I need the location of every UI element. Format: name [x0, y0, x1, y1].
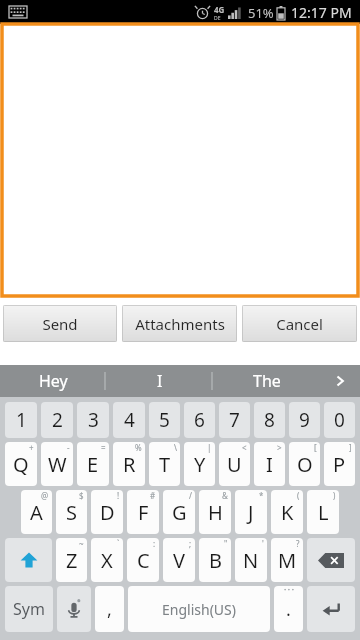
staticText: :	[153, 538, 156, 549]
staticText: <	[242, 442, 247, 453]
button[interactable]: Sym	[5, 586, 53, 632]
staticText: C	[137, 547, 150, 574]
staticText: [	[314, 442, 317, 453]
button[interactable]: I	[106, 365, 213, 397]
button[interactable]: Send	[3, 305, 117, 342]
staticText: L	[318, 499, 329, 526]
staticText: Cancel	[276, 314, 323, 334]
staticText: "	[224, 538, 228, 549]
staticText: 9	[299, 407, 310, 433]
button[interactable]: +	[5, 442, 37, 486]
button[interactable]: *	[235, 490, 267, 534]
button[interactable]: -	[41, 442, 73, 486]
button[interactable]: =	[77, 442, 109, 486]
staticText: R	[123, 451, 136, 478]
button[interactable]: 3	[77, 402, 109, 438]
button[interactable]: (	[271, 490, 303, 534]
staticText: $	[79, 490, 84, 501]
staticText: >	[277, 442, 282, 453]
staticText: U	[227, 451, 242, 478]
button[interactable]: ,	[95, 586, 124, 632]
button[interactable]: |	[184, 442, 215, 486]
button[interactable]: 0	[324, 402, 355, 438]
staticText: ,	[107, 597, 112, 622]
button[interactable]: 8	[254, 402, 285, 438]
button[interactable]: The	[213, 365, 320, 397]
staticText: Q	[13, 451, 29, 478]
staticText: O	[297, 451, 313, 478]
staticText: K	[281, 499, 294, 526]
button[interactable]: 4	[113, 402, 145, 438]
staticText: • • •	[284, 586, 294, 594]
button[interactable]: Backspace	[307, 538, 355, 582]
staticText: I	[266, 451, 273, 478]
staticText: |	[207, 442, 212, 453]
staticText: V	[173, 547, 185, 574]
staticText: T	[159, 451, 171, 478]
staticText: M	[278, 547, 297, 574]
button[interactable]: 2	[41, 402, 73, 438]
staticText: Attachments	[135, 314, 225, 334]
staticText: =	[101, 442, 106, 453]
staticText: (	[297, 490, 300, 501]
button[interactable]: <	[219, 442, 250, 486]
staticText: 0	[334, 407, 345, 433]
staticText: -	[67, 442, 70, 453]
button[interactable]: 9	[289, 402, 320, 438]
staticText: P	[333, 451, 346, 478]
button[interactable]: /	[163, 490, 195, 534]
button[interactable]: ]	[324, 442, 355, 486]
staticText: English(US)	[162, 600, 236, 619]
staticText: H	[208, 499, 223, 526]
staticText: `	[117, 538, 120, 549]
staticText: 2	[52, 407, 63, 433]
staticText: G	[172, 499, 187, 526]
staticText: Z	[66, 547, 78, 574]
button[interactable]: &	[199, 490, 231, 534]
button[interactable]: 1	[5, 402, 37, 438]
button[interactable]: 6	[184, 402, 215, 438]
staticText: *	[259, 490, 264, 501]
button[interactable]: $	[56, 490, 87, 534]
button[interactable]: More suggestions	[320, 365, 360, 397]
staticText: I	[157, 370, 163, 392]
button[interactable]: Hey	[0, 365, 106, 397]
button[interactable]: ?	[271, 538, 303, 582]
button[interactable]: ~	[56, 538, 87, 582]
staticText: #	[150, 490, 156, 501]
button[interactable]: Enter	[307, 586, 355, 632]
staticText: A	[30, 499, 43, 526]
button[interactable]: Shift	[5, 538, 52, 582]
button[interactable]: #	[127, 490, 159, 534]
button[interactable]: 5	[149, 402, 180, 438]
staticText: F	[138, 499, 149, 526]
button[interactable]: 7	[219, 402, 250, 438]
staticText: )	[333, 490, 336, 501]
button[interactable]: "	[199, 538, 231, 582]
button[interactable]: '	[235, 538, 267, 582]
button[interactable]: :	[127, 538, 159, 582]
button[interactable]: Voice input	[57, 586, 91, 632]
button[interactable]: `	[91, 538, 123, 582]
staticText: ]	[349, 442, 352, 453]
staticText: ?	[296, 538, 300, 549]
staticText: The	[253, 370, 281, 392]
staticText: 12:17 PM	[291, 3, 352, 22]
button[interactable]: [	[289, 442, 320, 486]
button[interactable]: >	[254, 442, 285, 486]
staticText: 6	[194, 407, 205, 433]
button[interactable]	[2, 24, 358, 296]
staticText: 3	[88, 407, 99, 433]
button[interactable]: Attachments	[122, 305, 237, 342]
button[interactable]: )	[307, 490, 339, 534]
button[interactable]: %	[113, 442, 145, 486]
button[interactable]: Cancel	[242, 305, 357, 342]
button[interactable]: English(US)	[128, 586, 270, 632]
button[interactable]: ;	[163, 538, 195, 582]
button[interactable]: !	[91, 490, 123, 534]
button[interactable]: .	[274, 586, 303, 632]
button[interactable]: \	[149, 442, 180, 486]
staticText: W	[48, 451, 67, 478]
button[interactable]: @	[21, 490, 52, 534]
staticText: S	[66, 499, 77, 526]
